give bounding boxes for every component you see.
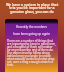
button[interactable]: have been going up again xyxy=(7,32,56,36)
staticText: We have a system in place that lets you … xyxy=(4,2,60,14)
staticText: There are a number of things that are im… xyxy=(7,39,56,67)
button[interactable]: Recently the numbers xyxy=(7,25,56,29)
